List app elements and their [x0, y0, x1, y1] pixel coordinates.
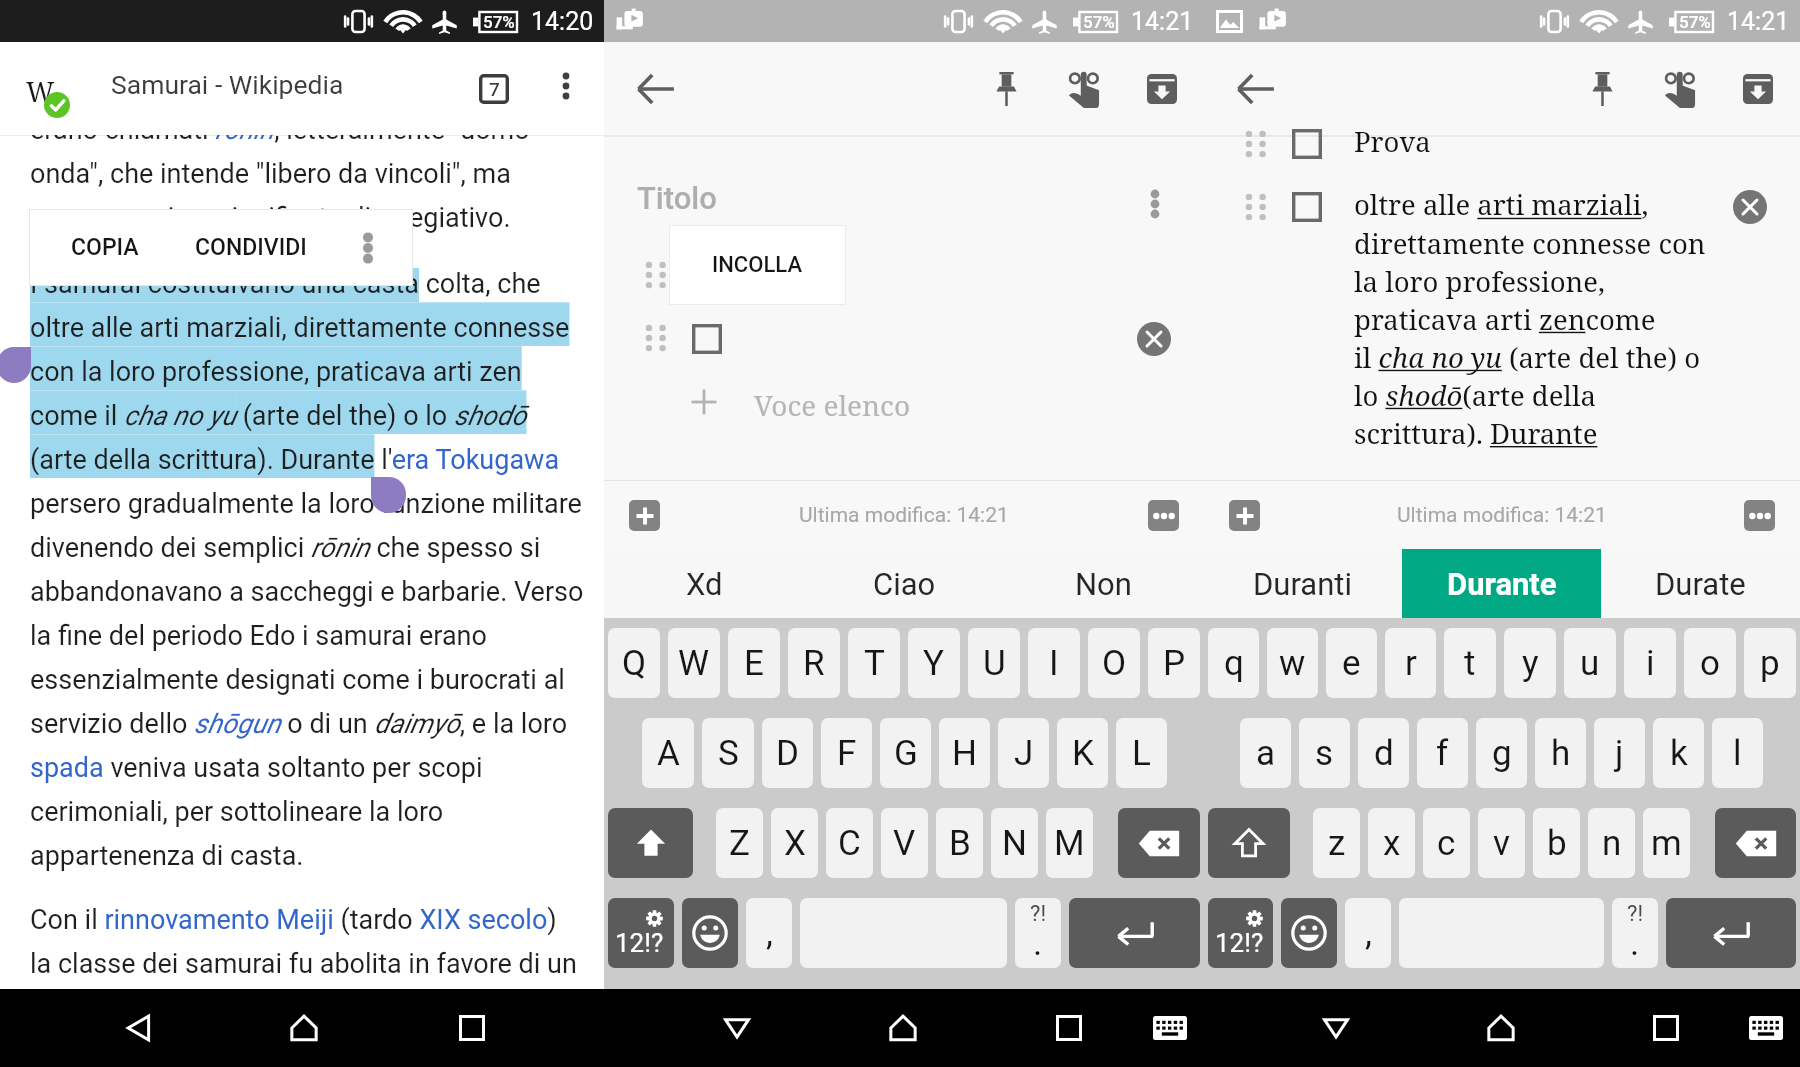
button[interactable]: w: [1267, 628, 1318, 698]
button[interactable]: S: [702, 718, 754, 788]
button[interactable]: More options: [540, 60, 592, 112]
button[interactable]: C: [826, 808, 873, 878]
button[interactable]: Switch keyboard: [1139, 997, 1201, 1059]
button[interactable]: O: [1088, 628, 1140, 698]
button[interactable]: Open tabs: [465, 60, 523, 118]
button[interactable]: Emoji: [682, 898, 738, 968]
button[interactable]: More text actions: [323, 209, 413, 286]
button[interactable]: h: [1535, 718, 1586, 788]
button[interactable]: COPIA: [29, 209, 181, 286]
button[interactable]: L: [1116, 718, 1167, 788]
button[interactable]: u: [1564, 628, 1616, 698]
button[interactable]: I: [1028, 628, 1080, 698]
button[interactable]: J: [998, 718, 1049, 788]
button[interactable]: c: [1423, 808, 1470, 878]
button[interactable]: x: [1368, 808, 1415, 878]
button[interactable]: Hide keyboard: [706, 997, 768, 1059]
button[interactable]: Shift: [1208, 808, 1290, 878]
button[interactable]: Period: [1015, 898, 1061, 968]
button[interactable]: Backspace: [1715, 808, 1796, 878]
button[interactable]: Duranti: [1203, 549, 1402, 618]
button[interactable]: n: [1588, 808, 1635, 878]
button[interactable]: p: [1744, 628, 1796, 698]
button[interactable]: A: [642, 718, 694, 788]
button[interactable]: Checkbox: [692, 324, 722, 354]
button[interactable]: Reminder: [1056, 61, 1112, 117]
button[interactable]: l: [1712, 718, 1763, 788]
button[interactable]: e: [1326, 628, 1377, 698]
button[interactable]: j: [1594, 718, 1645, 788]
button[interactable]: Pin note: [978, 61, 1034, 117]
button[interactable]: Switch keyboard: [1735, 997, 1797, 1059]
button[interactable]: Emoji: [1281, 898, 1337, 968]
button[interactable]: Archive: [1730, 61, 1786, 117]
button[interactable]: Durante: [1402, 549, 1601, 618]
button[interactable]: Back: [108, 997, 170, 1059]
button[interactable]: T: [848, 628, 900, 698]
button[interactable]: Home: [273, 997, 335, 1059]
button[interactable]: CONDIVIDI: [181, 209, 321, 286]
button[interactable]: Q: [608, 628, 660, 698]
button[interactable]: Period: [1612, 898, 1658, 968]
button[interactable]: W: [668, 628, 720, 698]
button[interactable]: ,: [1345, 898, 1391, 968]
button[interactable]: v: [1478, 808, 1525, 878]
button[interactable]: Archive: [1134, 61, 1190, 117]
button[interactable]: Xd: [604, 549, 804, 618]
button[interactable]: Hide keyboard: [1305, 997, 1367, 1059]
button[interactable]: Add: [1229, 500, 1260, 531]
button[interactable]: Recents: [441, 997, 503, 1059]
button[interactable]: P: [1148, 628, 1200, 698]
button[interactable]: q: [1208, 628, 1259, 698]
button[interactable]: Delete item: [1137, 322, 1171, 356]
button[interactable]: t: [1444, 628, 1496, 698]
button[interactable]: Symbols: [608, 898, 674, 968]
button[interactable]: d: [1358, 718, 1409, 788]
button[interactable]: Backspace: [1118, 808, 1200, 878]
button[interactable]: Note menu: [1148, 500, 1179, 531]
button[interactable]: Back: [628, 61, 684, 117]
button[interactable]: Back: [1228, 61, 1284, 117]
button[interactable]: Add: [629, 500, 660, 531]
button[interactable]: D: [762, 718, 813, 788]
button[interactable]: o: [1684, 628, 1736, 698]
button[interactable]: N: [991, 808, 1038, 878]
button[interactable]: f: [1417, 718, 1468, 788]
button[interactable]: Note menu: [1744, 500, 1775, 531]
button[interactable]: b: [1533, 808, 1580, 878]
button[interactable]: G: [880, 718, 931, 788]
button[interactable]: E: [728, 628, 780, 698]
button[interactable]: M: [1046, 808, 1093, 878]
button[interactable]: z: [1313, 808, 1360, 878]
button[interactable]: ,: [746, 898, 792, 968]
button[interactable]: r: [1385, 628, 1436, 698]
button[interactable]: Home: [1470, 997, 1532, 1059]
button[interactable]: Pin note: [1574, 61, 1630, 117]
button[interactable]: Reminder: [1652, 61, 1708, 117]
button[interactable]: i: [1624, 628, 1676, 698]
button[interactable]: F: [821, 718, 872, 788]
button[interactable]: Y: [908, 628, 960, 698]
button[interactable]: s: [1299, 718, 1350, 788]
button[interactable]: Shift: [608, 808, 693, 878]
button[interactable]: Z: [716, 808, 763, 878]
button[interactable]: k: [1653, 718, 1704, 788]
button[interactable]: H: [939, 718, 990, 788]
button[interactable]: Note options: [1131, 180, 1179, 228]
button[interactable]: a: [1240, 718, 1291, 788]
button[interactable]: B: [936, 808, 983, 878]
button[interactable]: R: [788, 628, 840, 698]
button[interactable]: Delete item: [1733, 190, 1767, 224]
button[interactable]: Site information: [10, 62, 66, 118]
button[interactable]: Enter: [1666, 898, 1796, 968]
button[interactable]: g: [1476, 718, 1527, 788]
button[interactable]: Durate: [1601, 549, 1800, 618]
button[interactable]: Ciao: [804, 549, 1004, 618]
button[interactable]: Enter: [1069, 898, 1200, 968]
button[interactable]: Non: [1004, 549, 1203, 618]
button[interactable]: INCOLLA: [669, 225, 846, 305]
button[interactable]: Recents: [1635, 997, 1697, 1059]
button[interactable]: V: [881, 808, 928, 878]
